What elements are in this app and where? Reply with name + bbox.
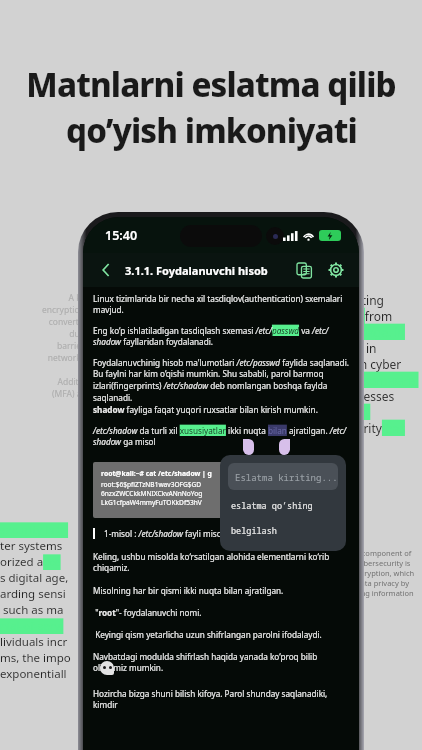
staticText: Additiona <box>2 376 96 388</box>
staticText: Keyingi qism yetarlicha uzun shifrlangan… <box>93 629 322 640</box>
staticText: 3.1.1. Foydalanuvchi hisob ma'lumo… <box>125 263 291 278</box>
staticText: converting i <box>2 316 96 328</box>
staticText: 6nzxZWCCkkMNIXCkvANnNoYog <box>101 489 203 498</box>
staticText: data privacy by <box>356 578 410 588</box>
staticText: s from <box>356 308 393 324</box>
staticText: cybersecurity is <box>356 558 411 568</box>
staticText: and <box>2 364 96 376</box>
staticText: nsomware, <box>356 372 419 388</box>
staticText: m cyber <box>356 356 402 372</box>
staticText: Hozircha bizga shuni bilish kifoya. Paro… <box>93 688 349 711</box>
staticText: Foydalanuvchinig hisob ma'lumotlari /etc… <box>93 357 349 416</box>
staticText: "root"- foydalanuvchi nomi. <box>93 607 202 618</box>
staticText: 1-misol : /etc/shadow fayli misoli. <box>104 528 229 539</box>
staticText: orized acce <box>0 554 61 570</box>
staticText: arding sensi <box>0 586 66 602</box>
staticText: Navbatdagi modulda shifrlash haqida yana… <box>93 651 349 674</box>
staticText: during <box>2 328 96 340</box>
staticText: (MFA) adds <box>2 388 96 400</box>
button[interactable]: Copy <box>291 257 317 283</box>
button[interactable]: Settings <box>323 257 349 283</box>
staticText: Eslatma kiriting... <box>235 471 338 483</box>
staticText: networks, w <box>2 352 96 364</box>
staticText: s digital age, <box>0 570 69 586</box>
staticText: encryption, w <box>2 304 96 316</box>
staticText: such as ma <box>0 602 64 618</box>
staticText: /etc/shadow da turli xil xususiyatlar ik… <box>93 425 349 448</box>
staticText: ms, the impo <box>0 650 71 666</box>
staticText: lividuals incr <box>0 634 68 650</box>
staticText: ta! <box>356 404 371 420</box>
staticText: mult <box>2 400 96 412</box>
staticText: LkG1cfpaW4mmyFuTOKkDf53hV <box>101 498 202 507</box>
staticText: root@kali:~# cat /etc/shadow | g <box>101 469 212 478</box>
staticText: e in <box>356 340 377 356</box>
staticText: root:$6$pfiZTzNB1wav3OFG$GD <box>101 480 202 489</box>
staticText: Linux tizimlarida bir necha xil tasdiqlo… <box>93 293 349 316</box>
staticText: nesses <box>356 388 395 404</box>
button[interactable]: Back <box>93 257 119 283</box>
staticText: Keling, ushbu misolda ko‘rsatilgan alohi… <box>93 551 349 574</box>
staticText: ting information <box>356 588 414 598</box>
staticText: security is th <box>0 522 69 538</box>
staticText: urity has <box>356 420 405 436</box>
staticText: eslatma qo‘shing <box>231 500 313 512</box>
staticText: Misolning har bir qismi ikki nuqta bilan… <box>93 585 284 596</box>
staticText: cting <box>356 292 384 308</box>
button[interactable]: eslatma qo‘shing <box>228 498 338 514</box>
staticText: ter systems <box>0 538 63 554</box>
staticText: belgilash <box>231 525 277 537</box>
staticText: qo’yish imkoniyati <box>66 108 357 153</box>
button[interactable]: belgilash <box>228 523 338 539</box>
staticText: nial-of-servi <box>0 618 64 634</box>
staticText: exponentiall <box>0 666 67 682</box>
staticText: Matnlarni eslatma qilib <box>26 62 396 107</box>
staticText: barriers b <box>2 340 96 352</box>
staticText: A key c <box>2 292 96 304</box>
button[interactable]: Eslatma kiriting... <box>228 463 338 490</box>
staticText: mage. in <box>356 324 405 340</box>
staticText: Eng ko‘p ishlatiladigan tasdiqlash sxema… <box>93 325 349 348</box>
staticText: ncryption, which <box>356 568 415 578</box>
staticText: y component of <box>356 548 412 558</box>
staticText: 15:40 <box>105 227 138 244</box>
